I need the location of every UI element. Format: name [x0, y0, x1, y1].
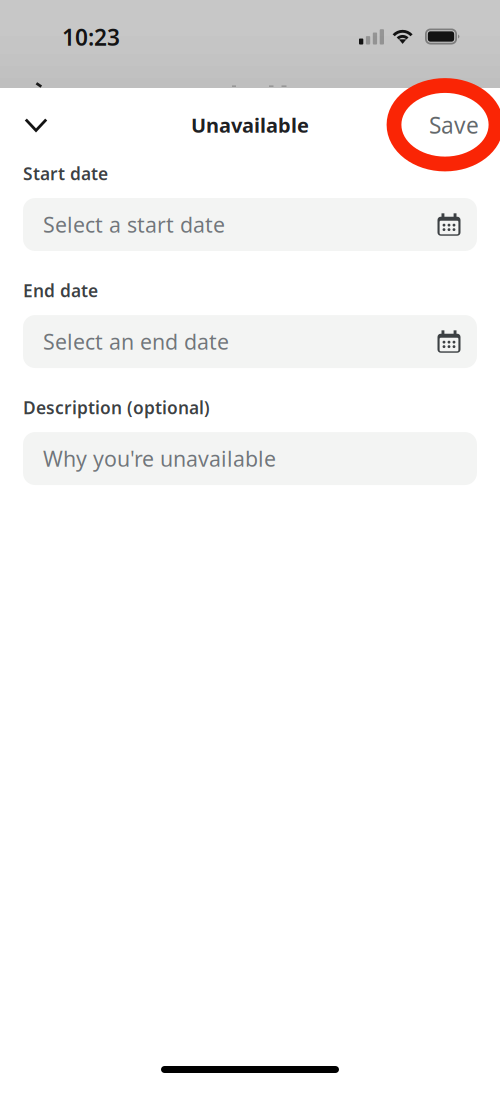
button[interactable]: Save [411, 102, 479, 148]
button[interactable]: Select a start date [23, 198, 477, 251]
button[interactable]: Select an end date [23, 315, 477, 368]
button[interactable]: Close [13, 102, 59, 148]
staticText: Select an end date [43, 327, 229, 356]
staticText: Select a start date [43, 210, 225, 239]
staticText: End date [23, 279, 98, 302]
staticText: Save [429, 110, 479, 140]
staticText: Start date [23, 162, 108, 185]
staticText: Why you're unavailable [43, 444, 276, 473]
button[interactable]: Why you're unavailable [23, 432, 477, 485]
staticText: Unavailable [191, 112, 309, 138]
staticText: Description (optional) [23, 396, 210, 419]
staticText: 10:23 [62, 22, 120, 52]
